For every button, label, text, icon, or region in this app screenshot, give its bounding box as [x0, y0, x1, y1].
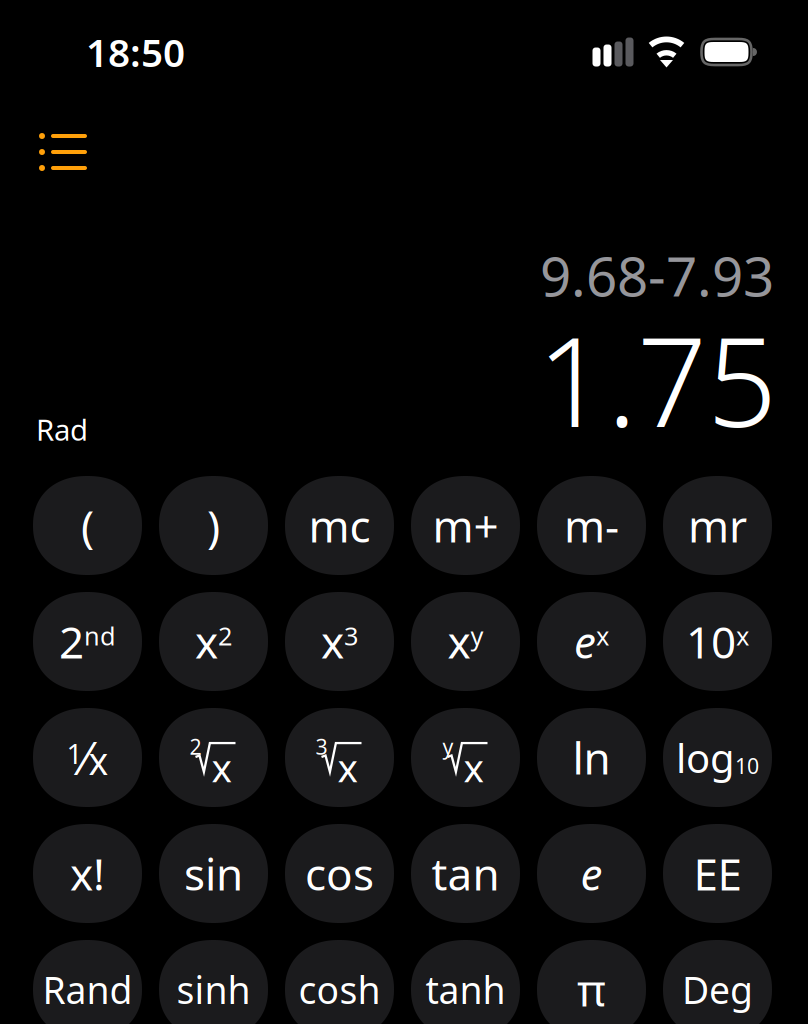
button[interactable]: mr — [663, 476, 772, 575]
button[interactable]: π — [537, 940, 646, 1024]
button[interactable]: mc — [285, 476, 394, 575]
button[interactable]: x2 — [159, 592, 268, 691]
staticText: cosh — [298, 965, 380, 1014]
button[interactable]: m+ — [411, 476, 520, 575]
button[interactable]: ln — [537, 708, 646, 807]
staticText: Rand — [42, 965, 132, 1014]
button[interactable]: sin — [159, 824, 268, 923]
staticText: sin — [184, 844, 243, 903]
button[interactable]: 10x — [663, 592, 772, 691]
button[interactable]: 2nd — [33, 592, 142, 691]
button[interactable]: tanh — [411, 940, 520, 1024]
staticText: x! — [70, 844, 105, 903]
staticText: x2 — [195, 612, 232, 671]
staticText: x3 — [321, 612, 358, 671]
staticText: Rad — [36, 410, 88, 449]
button[interactable]: History — [39, 134, 87, 170]
button[interactable]: m- — [537, 476, 646, 575]
button[interactable]: x3 — [285, 592, 394, 691]
staticText: π — [577, 960, 606, 1019]
staticText: m+ — [432, 496, 498, 555]
staticText: mc — [308, 496, 370, 555]
staticText: 2 — [189, 732, 201, 761]
button[interactable]: e — [537, 824, 646, 923]
staticText: sinh — [176, 965, 250, 1014]
staticText: mr — [688, 496, 747, 555]
staticText: Deg — [682, 965, 753, 1014]
button[interactable]: xy — [411, 592, 520, 691]
staticText: xy — [447, 612, 483, 671]
button[interactable]: ) — [159, 476, 268, 575]
staticText: x — [211, 741, 231, 793]
button[interactable]: cos — [285, 824, 394, 923]
staticText: y — [442, 732, 453, 761]
staticText: ) — [207, 496, 220, 555]
button[interactable]: tan — [411, 824, 520, 923]
staticText: ( — [81, 496, 94, 555]
button[interactable]: cube root — [285, 708, 394, 807]
staticText: 1⁄x — [66, 727, 108, 788]
button[interactable]: ex — [537, 592, 646, 691]
button[interactable]: 1⁄x — [33, 708, 142, 807]
button[interactable]: ( — [33, 476, 142, 575]
button[interactable]: EE — [663, 824, 772, 923]
staticText: tanh — [425, 965, 505, 1014]
staticText: cos — [305, 844, 374, 903]
staticText: 3 — [315, 732, 327, 761]
button[interactable]: sinh — [159, 940, 268, 1024]
staticText: EE — [693, 844, 741, 903]
staticText: ln — [572, 728, 610, 787]
button[interactable]: Deg — [663, 940, 772, 1024]
staticText: e — [580, 844, 602, 903]
staticText: x — [463, 741, 483, 793]
staticText: tan — [431, 844, 499, 903]
button[interactable]: log10 — [663, 708, 772, 807]
button[interactable]: x! — [33, 824, 142, 923]
staticText: m- — [564, 496, 619, 555]
staticText: 1.75 — [537, 298, 777, 461]
staticText: 18:50 — [86, 26, 185, 78]
button[interactable]: y-th root — [411, 708, 520, 807]
button[interactable]: square root — [159, 708, 268, 807]
staticText: 2nd — [59, 612, 116, 671]
button[interactable]: cosh — [285, 940, 394, 1024]
staticText: x — [337, 741, 357, 793]
staticText: 10x — [686, 612, 749, 671]
staticText: 9.68-7.93 — [540, 239, 774, 312]
staticText: log10 — [676, 731, 759, 784]
staticText: ex — [574, 612, 609, 671]
button[interactable]: Rand — [33, 940, 142, 1024]
